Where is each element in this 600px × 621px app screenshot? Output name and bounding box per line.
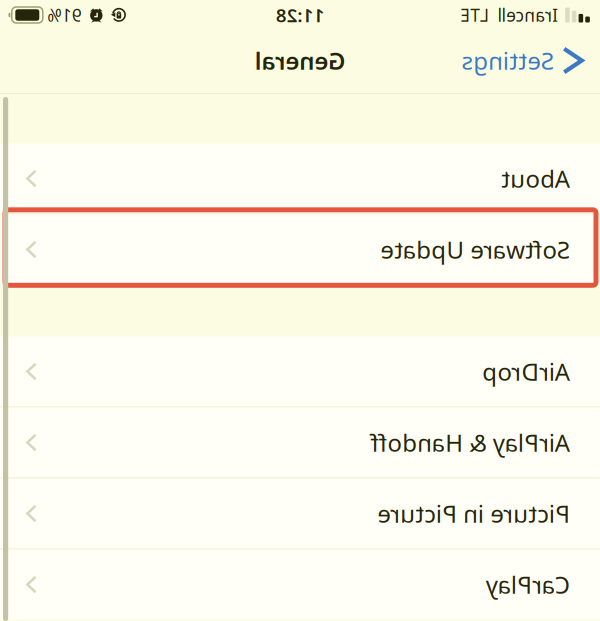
button[interactable]: AirDrop — [0, 336, 600, 406]
staticText: Software Update — [30, 234, 220, 265]
staticText: AirDrop — [30, 356, 118, 387]
button[interactable]: About — [0, 143, 600, 213]
button[interactable]: CarPlay — [0, 549, 600, 619]
staticText: LTE — [111, 3, 140, 26]
staticText: About — [30, 163, 99, 194]
staticText: 11:28 — [275, 3, 324, 27]
staticText: General — [254, 45, 345, 76]
button[interactable]: Picture in Picture — [0, 478, 600, 548]
staticText: 91% — [518, 3, 552, 26]
button[interactable]: Software Update — [0, 214, 600, 284]
staticText: AirPlay & Handoff — [30, 427, 230, 458]
staticText: Picture in Picture — [30, 498, 223, 529]
staticText: Irancell — [42, 3, 102, 26]
staticText: CarPlay — [30, 569, 114, 600]
button[interactable]: AirPlay & Handoff — [0, 407, 600, 477]
